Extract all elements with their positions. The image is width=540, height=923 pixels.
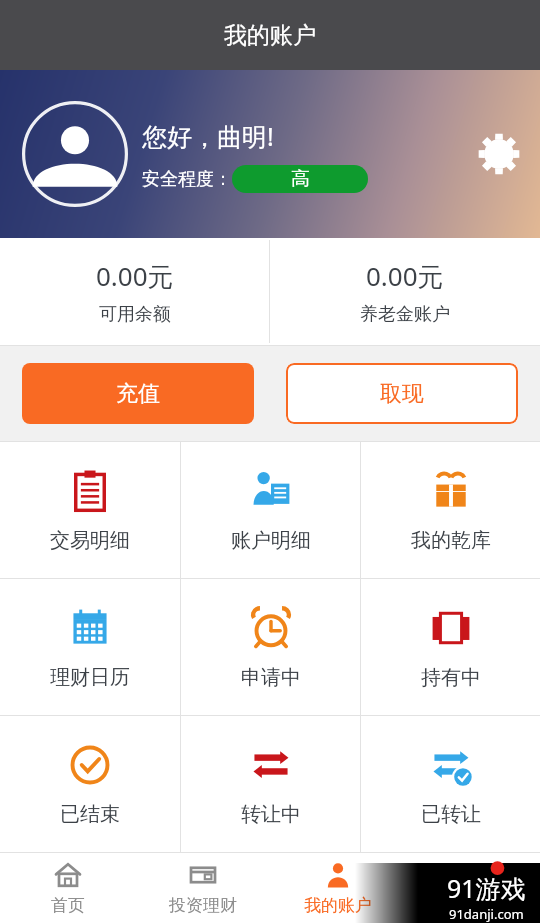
staticText: 我的账户 [224, 21, 316, 50]
staticText: 持有中 [421, 665, 481, 690]
button[interactable]: 转让中 [181, 716, 360, 852]
button[interactable]: 理财日历 [0, 579, 180, 715]
button[interactable]: 更多 [405, 853, 540, 923]
staticText: 我的乾库 [411, 528, 491, 553]
staticText: 交易明细 [50, 528, 130, 553]
staticText: 养老金账户 [360, 303, 450, 326]
button[interactable]: 投资理财 [135, 853, 270, 923]
button[interactable]: 取现 [286, 363, 518, 424]
staticText: 高 [291, 167, 310, 191]
staticText: 转让中 [241, 802, 301, 827]
button[interactable]: Profile photo [22, 101, 128, 207]
button[interactable]: 已转让 [361, 716, 540, 852]
staticText: 我的账户 [304, 895, 372, 916]
button[interactable]: 我的账户 [270, 853, 405, 923]
button[interactable]: 持有中 [361, 579, 540, 715]
button[interactable]: 0.00元 [270, 238, 540, 345]
staticText: 理财日历 [50, 665, 130, 690]
staticText: 0.00元 [366, 258, 444, 294]
staticText: 首页 [51, 895, 85, 916]
button[interactable]: 充值 [22, 363, 254, 424]
button[interactable]: 申请中 [181, 579, 360, 715]
button[interactable]: 首页 [0, 853, 135, 923]
staticText: 更多 [456, 895, 490, 916]
staticText: 充值 [116, 380, 160, 408]
staticText: 0.00元 [96, 258, 174, 294]
staticText: 您好，曲明! [142, 119, 274, 153]
staticText: 账户明细 [231, 528, 311, 553]
staticText: 申请中 [241, 665, 301, 690]
staticText: 91danji.com [449, 905, 524, 923]
button[interactable]: Settings [473, 128, 525, 180]
staticText: 投资理财 [169, 895, 237, 916]
staticText: 安全程度： [142, 168, 232, 191]
staticText: 已结束 [60, 802, 120, 827]
button[interactable]: 账户明细 [181, 442, 360, 578]
staticText: 可用余额 [99, 303, 171, 326]
button[interactable]: 我的乾库 [361, 442, 540, 578]
staticText: 91游戏 [447, 871, 526, 905]
button[interactable]: 已结束 [0, 716, 180, 852]
button[interactable]: 0.00元 [0, 238, 269, 345]
staticText: 取现 [380, 380, 424, 408]
button[interactable]: 高 [232, 165, 368, 193]
button[interactable]: 交易明细 [0, 442, 180, 578]
staticText: 已转让 [421, 802, 481, 827]
